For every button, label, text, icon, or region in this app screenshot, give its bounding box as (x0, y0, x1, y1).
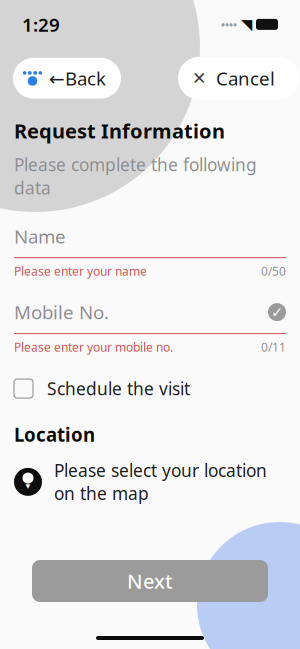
staticText: Mobile No. (14, 300, 109, 324)
staticText: Please complete the following data (14, 153, 257, 199)
staticText: ▾ (25, 481, 30, 491)
staticText: Location (14, 422, 95, 447)
staticText: Name (14, 224, 66, 249)
staticText: Please enter your mobile no. (14, 339, 173, 355)
staticText: Next (127, 568, 173, 594)
staticText: Please enter your name (14, 263, 147, 279)
staticText: Please select your location on the map (54, 459, 267, 505)
button[interactable]: ▾ (14, 459, 286, 505)
staticText: ←Back (49, 66, 106, 91)
staticText: •••• (221, 17, 237, 31)
button[interactable]: ✕ (178, 57, 287, 100)
staticText: Request Information (14, 118, 225, 144)
button[interactable]: ←Back (13, 58, 121, 99)
staticText: ✓ (271, 304, 283, 320)
staticText: ◥ (241, 16, 252, 33)
button[interactable]: Next (32, 560, 268, 602)
staticText: 0/50 (261, 263, 286, 279)
staticText: Schedule the visit (47, 377, 190, 400)
staticText: Cancel (216, 66, 275, 91)
staticText: 1:29 (22, 12, 60, 37)
button[interactable]: Schedule the visit (14, 377, 286, 400)
staticText: ✕ (192, 68, 207, 88)
staticText: 0/11 (261, 339, 286, 355)
